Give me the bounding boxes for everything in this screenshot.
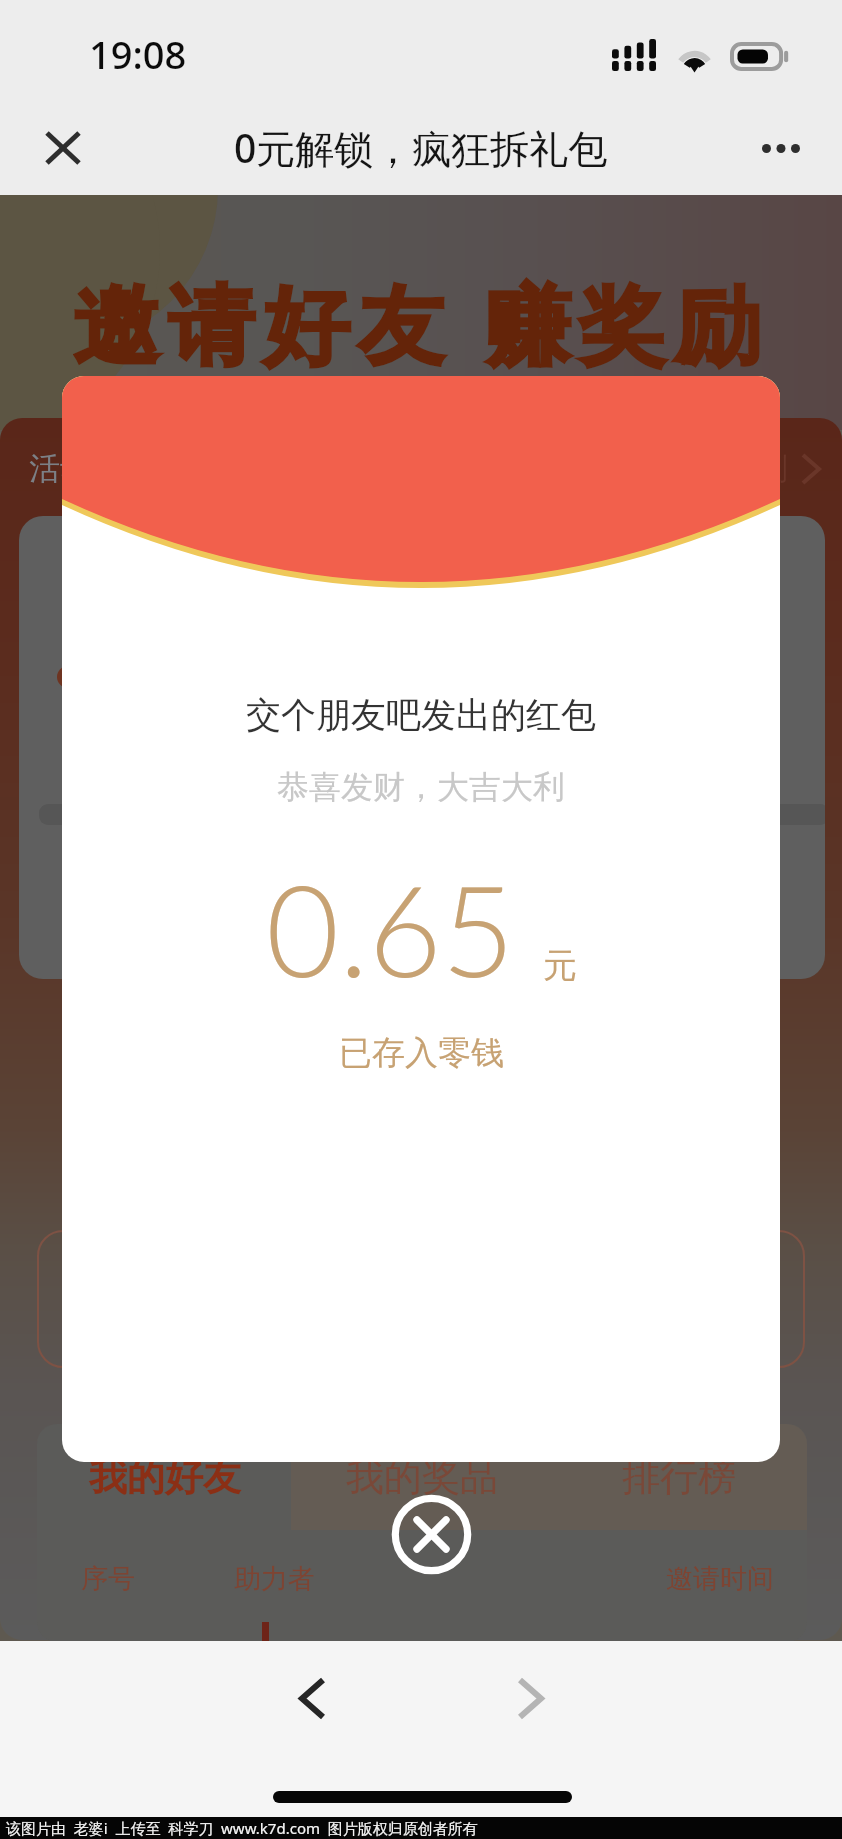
button[interactable]: Close xyxy=(30,115,96,181)
button[interactable]: Forward xyxy=(488,1656,572,1740)
staticText: 0.65 xyxy=(266,853,515,1004)
staticText: 交个朋友吧发出的红包 xyxy=(246,693,596,737)
staticText: 0元解锁，疯狂拆礼包 xyxy=(234,121,608,174)
staticText: 邀请时间 xyxy=(666,1562,774,1596)
button[interactable]: More options xyxy=(748,115,814,181)
staticText: 助力者 xyxy=(234,1562,315,1596)
staticText: 排行榜 xyxy=(622,1453,736,1501)
staticText: 活动规则 xyxy=(29,449,153,488)
staticText: 已存入零钱 xyxy=(339,1032,504,1074)
button[interactable]: 排行榜 xyxy=(550,1424,807,1530)
staticText: 恭喜发财，大吉大利 xyxy=(277,767,565,807)
staticText: 19:08 xyxy=(89,28,187,80)
button[interactable]: Close red packet xyxy=(388,1491,475,1578)
staticText: 邀请好友 赚奖励 xyxy=(73,264,770,374)
button[interactable]: 我的好友 xyxy=(37,1424,293,1530)
staticText: 该图片由 老婆i 上传至 科学刀 www.k7d.com 图片版权归原创者所有 xyxy=(6,1818,478,1838)
staticText: 序号 xyxy=(81,1562,135,1596)
staticText: 我的好友 xyxy=(89,1453,241,1501)
staticText: 奖励规则 xyxy=(664,449,788,488)
button[interactable]: Back xyxy=(270,1656,354,1740)
button[interactable]: 我的奖品 xyxy=(293,1424,550,1530)
staticText: 我的奖品 xyxy=(346,1453,498,1501)
staticText: 元 xyxy=(543,944,577,987)
